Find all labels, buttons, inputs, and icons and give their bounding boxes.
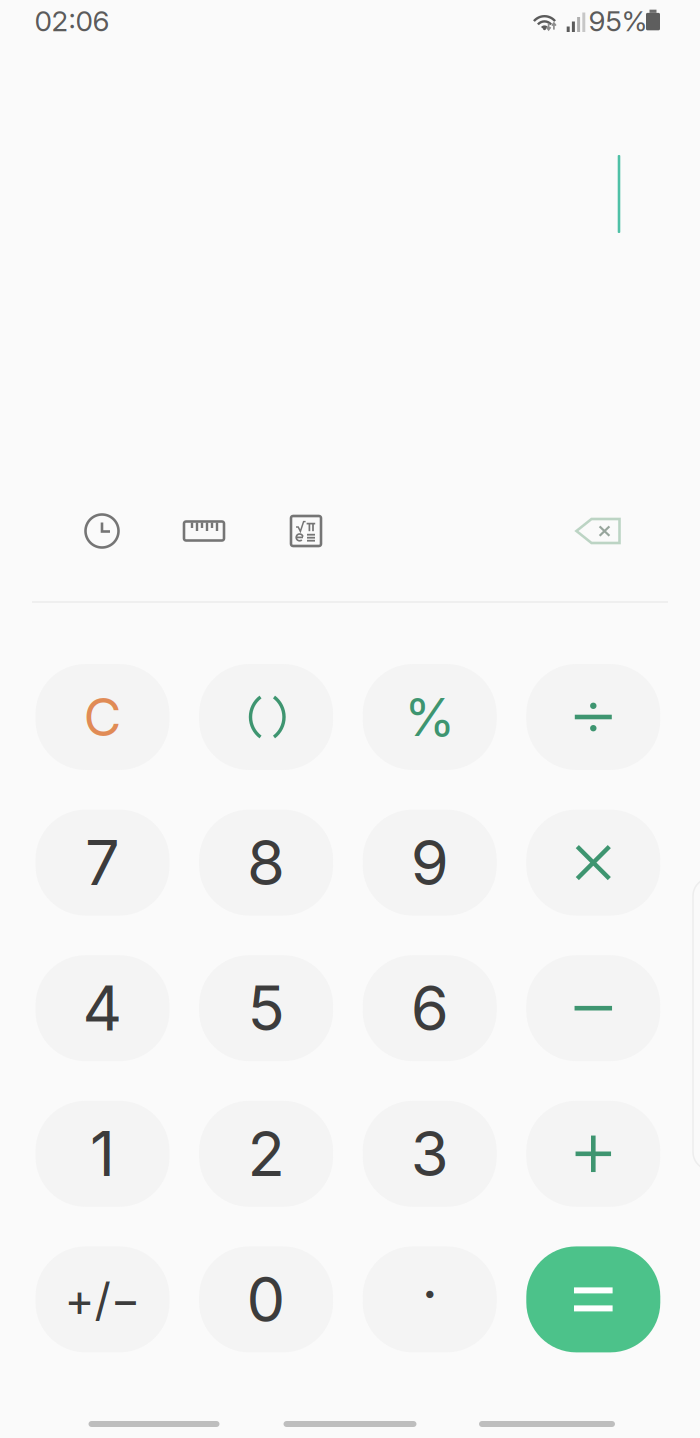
button[interactable]: 6 bbox=[363, 955, 497, 1061]
staticText: 7 bbox=[85, 825, 120, 900]
button[interactable]: 7 bbox=[35, 810, 169, 916]
button[interactable]: Divide bbox=[526, 664, 660, 770]
button[interactable]: C bbox=[35, 664, 169, 770]
staticText: 4 bbox=[82, 971, 122, 1045]
button[interactable]: 8 bbox=[199, 810, 333, 916]
button[interactable]: % bbox=[363, 664, 497, 770]
button[interactable]: 2 bbox=[199, 1101, 333, 1207]
staticText: % bbox=[404, 685, 455, 748]
button[interactable]: 4 bbox=[35, 955, 169, 1061]
button[interactable]: Parentheses bbox=[199, 664, 333, 770]
button[interactable]: 9 bbox=[363, 810, 497, 916]
button[interactable]: 3 bbox=[363, 1101, 497, 1207]
button[interactable]: Scientific calculator bbox=[288, 511, 324, 551]
staticText: 0 bbox=[247, 1262, 286, 1336]
button[interactable]: Backspace bbox=[571, 514, 625, 548]
button[interactable]: History bbox=[82, 511, 122, 551]
staticText: 1 bbox=[90, 1117, 115, 1191]
button[interactable]: Equals bbox=[526, 1246, 660, 1352]
staticText: C bbox=[83, 685, 121, 748]
button[interactable]: · bbox=[363, 1246, 497, 1352]
staticText: · bbox=[422, 1259, 438, 1327]
staticText: 02:06 bbox=[34, 4, 109, 38]
button[interactable]: Multiply bbox=[526, 810, 660, 916]
staticText: 6 bbox=[411, 971, 449, 1045]
button[interactable]: 5 bbox=[199, 955, 333, 1061]
button[interactable]: +/− bbox=[35, 1246, 169, 1352]
staticText: 8 bbox=[247, 825, 285, 900]
button[interactable]: Minus bbox=[526, 955, 660, 1061]
staticText: 9 bbox=[411, 825, 449, 900]
staticText: +/− bbox=[64, 1272, 140, 1327]
staticText: 95% bbox=[588, 4, 647, 38]
button[interactable]: 0 bbox=[199, 1246, 333, 1352]
button[interactable]: 1 bbox=[35, 1101, 169, 1207]
button[interactable]: Unit converter bbox=[182, 511, 226, 551]
staticText: 5 bbox=[248, 971, 285, 1045]
staticText: 2 bbox=[248, 1117, 285, 1191]
button[interactable]: Plus bbox=[526, 1101, 660, 1207]
staticText: 3 bbox=[411, 1117, 449, 1191]
